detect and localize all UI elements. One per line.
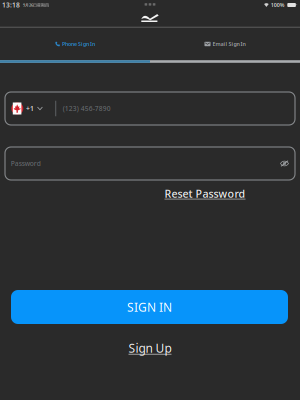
staticText: (123) 456-7890 <box>63 104 111 113</box>
staticText: Email Sign In <box>212 40 245 48</box>
staticText: 13:18 <box>2 1 20 9</box>
staticText: Password <box>11 159 41 168</box>
button[interactable]: Email Sign In <box>150 33 300 55</box>
button[interactable]: Phone Sign In <box>0 33 150 55</box>
staticText: Reset Password <box>164 186 245 201</box>
staticText: 9月26日星期四 <box>23 2 49 8</box>
button[interactable]: Reset Password <box>164 186 245 201</box>
staticText: 100% <box>271 1 285 9</box>
staticText: +1 <box>26 104 34 113</box>
button[interactable]: SIGN IN <box>11 290 288 324</box>
button[interactable]: Sign Up <box>0 341 300 355</box>
button[interactable]: Show password <box>274 147 295 180</box>
staticText: Phone Sign In <box>62 40 95 48</box>
staticText: Sign Up <box>128 340 171 356</box>
button[interactable]: +1 <box>5 92 55 125</box>
staticText: SIGN IN <box>127 299 172 315</box>
